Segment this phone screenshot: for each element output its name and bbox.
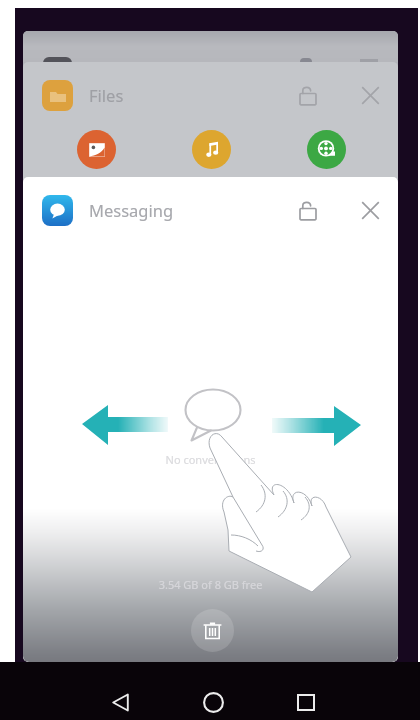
button[interactable]: Files: [23, 62, 398, 179]
staticText: Files: [89, 84, 124, 106]
button[interactable]: [192, 130, 231, 169]
button[interactable]: Unlock: [294, 81, 322, 109]
button[interactable]: Recents: [292, 688, 320, 716]
button[interactable]: [307, 130, 346, 169]
button[interactable]: Close: [356, 196, 384, 224]
button[interactable]: Close: [356, 81, 384, 109]
button[interactable]: Home: [199, 688, 227, 716]
button[interactable]: [77, 130, 116, 169]
button[interactable]: Back: [106, 688, 134, 716]
staticText: No conversations: [23, 452, 398, 467]
staticText: Messaging: [89, 199, 174, 221]
button[interactable]: Messaging: [23, 177, 398, 662]
button[interactable]: Unlock: [294, 196, 322, 224]
button[interactable]: Clear all: [191, 609, 234, 652]
staticText: 3.54 GB of 8 GB free: [23, 577, 398, 592]
